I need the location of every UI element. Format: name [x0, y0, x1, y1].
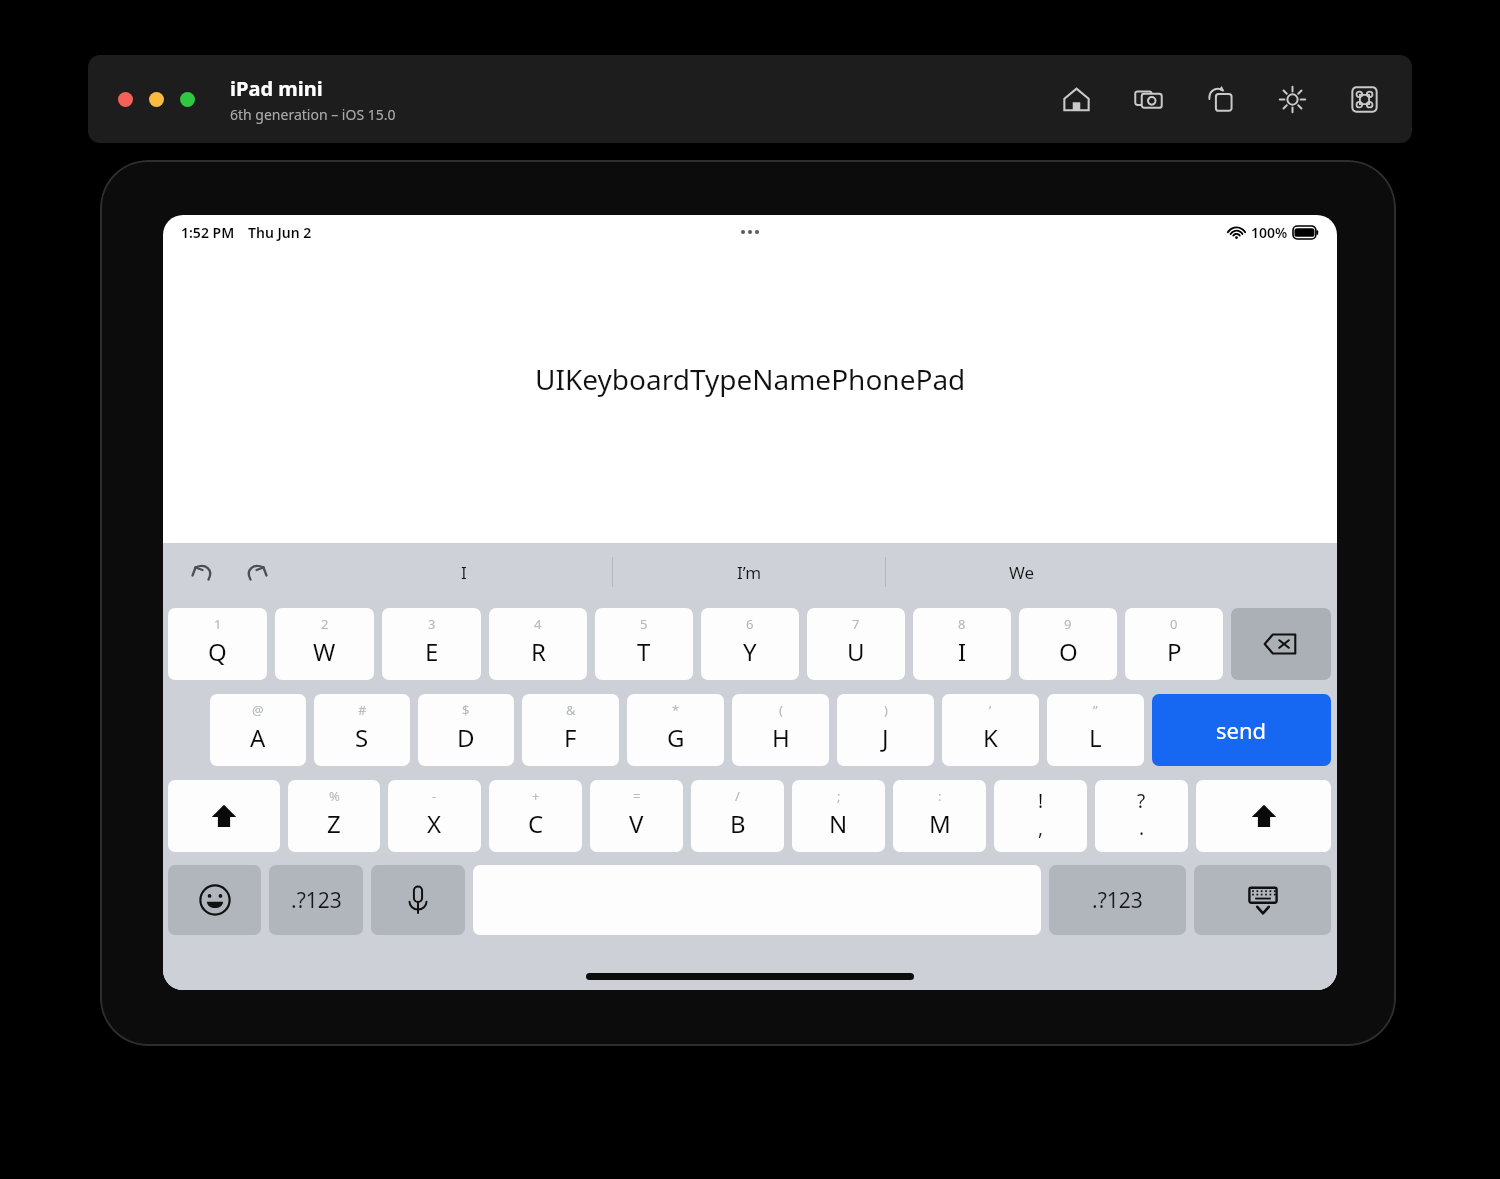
button[interactable]: 5 [595, 608, 693, 680]
staticText: . [1139, 815, 1145, 841]
button[interactable]: Emoji [168, 865, 261, 935]
button[interactable]: Appearance [1274, 81, 1310, 117]
button[interactable]: * [627, 694, 724, 766]
button[interactable]: Redo [237, 553, 275, 591]
button[interactable]: Rotate [1202, 81, 1238, 117]
button[interactable]: ; [792, 780, 885, 852]
button[interactable]: & [522, 694, 619, 766]
button[interactable]: = [590, 780, 683, 852]
staticText: P [1167, 635, 1182, 668]
staticText: 0 [1170, 615, 1178, 633]
staticText: Z [327, 807, 341, 840]
button[interactable]: 7 [807, 608, 905, 680]
button[interactable]: ) [837, 694, 934, 766]
staticText: + [532, 787, 540, 805]
staticText: 4 [534, 615, 542, 633]
button[interactable]: I’m [613, 543, 885, 601]
staticText: S [355, 721, 369, 754]
button[interactable]: / [691, 780, 784, 852]
staticText: $ [462, 701, 470, 719]
staticText: Thu Jun 2 [248, 223, 312, 242]
button[interactable]: .?123 [269, 865, 363, 935]
button[interactable]: ? [1095, 780, 1188, 852]
button[interactable]: : [893, 780, 986, 852]
button[interactable]: send [1152, 694, 1331, 766]
staticText: H [772, 721, 790, 754]
button[interactable]: ( [732, 694, 829, 766]
staticText: L [1089, 721, 1102, 754]
staticText: I’m [737, 561, 762, 584]
staticText: ? [1137, 788, 1146, 814]
staticText: ; [837, 787, 841, 805]
staticText: C [528, 807, 544, 840]
staticText: A [250, 721, 266, 754]
button[interactable]: 2 [275, 608, 374, 680]
staticText: .?123 [291, 886, 342, 915]
staticText: B [730, 807, 746, 840]
staticText: 5 [640, 615, 648, 633]
staticText: E [425, 635, 439, 668]
staticText: I [461, 561, 467, 584]
staticText: 2 [321, 615, 329, 633]
button[interactable]: Undo [183, 553, 221, 591]
staticText: iPad mini [230, 75, 323, 102]
staticText: % [329, 787, 340, 805]
button[interactable]: 4 [489, 608, 587, 680]
staticText: T [637, 635, 651, 668]
staticText: # [358, 701, 367, 719]
button[interactable]: Shift [1196, 780, 1331, 852]
staticText: ) [884, 701, 888, 719]
button[interactable]: 9 [1019, 608, 1117, 680]
staticText: * [672, 701, 680, 719]
button[interactable]: We [886, 543, 1158, 601]
staticText: UIKeyboardTypeNamePhonePad [535, 360, 966, 398]
button[interactable]: % [288, 780, 380, 852]
staticText: ! [1038, 788, 1044, 814]
button[interactable]: - [388, 780, 481, 852]
button[interactable]: Backspace [1231, 608, 1331, 680]
staticText: send [1216, 715, 1267, 745]
button[interactable]: Home [1058, 81, 1094, 117]
staticText: V [629, 807, 644, 840]
button[interactable]: Dictation [371, 865, 465, 935]
button[interactable]: 0 [1125, 608, 1223, 680]
staticText: = [633, 787, 641, 805]
staticText: O [1059, 635, 1078, 668]
staticText: 6 [746, 615, 754, 633]
button[interactable]: Dismiss keyboard [1194, 865, 1331, 935]
button[interactable]: ’ [942, 694, 1039, 766]
staticText: ( [779, 701, 783, 719]
button[interactable] [118, 92, 133, 107]
staticText: ’ [989, 701, 992, 719]
staticText: G [667, 721, 685, 754]
staticText: @ [252, 701, 264, 719]
button[interactable]: .?123 [1049, 865, 1186, 935]
staticText: / [735, 787, 740, 805]
staticText: N [829, 807, 848, 840]
button[interactable]: Shift [168, 780, 280, 852]
staticText: - [432, 787, 437, 805]
staticText: 6th generation – iOS 15.0 [230, 105, 396, 124]
button[interactable]: ” [1047, 694, 1144, 766]
staticText: F [564, 721, 577, 754]
button[interactable]: 6 [701, 608, 799, 680]
staticText: X [427, 807, 442, 840]
staticText: D [457, 721, 475, 754]
button[interactable]: I [315, 543, 612, 601]
button[interactable] [149, 92, 164, 107]
button[interactable]: Screenshot [1130, 81, 1166, 117]
button[interactable]: 1 [168, 608, 267, 680]
button[interactable]: # [314, 694, 410, 766]
staticText: R [531, 635, 546, 668]
button[interactable]: ! [994, 780, 1087, 852]
button[interactable]: $ [418, 694, 514, 766]
button[interactable]: Keyboard shortcuts [1346, 81, 1382, 117]
button[interactable]: + [489, 780, 582, 852]
button[interactable] [180, 92, 195, 107]
button[interactable]: 3 [382, 608, 481, 680]
button[interactable]: 8 [913, 608, 1011, 680]
staticText: & [566, 701, 576, 719]
button[interactable]: @ [210, 694, 306, 766]
staticText: M [929, 807, 951, 840]
